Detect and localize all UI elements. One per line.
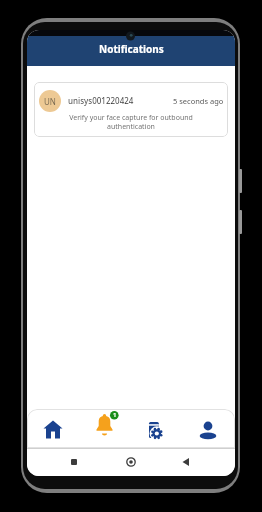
staticText: Verify your face capture for outbound au…	[69, 113, 193, 131]
button[interactable]: UN	[34, 82, 228, 137]
staticText: unisys001220424	[68, 95, 134, 106]
button[interactable]	[131, 409, 183, 448]
staticText: 5 seconds ago	[173, 96, 224, 106]
staticText: 1	[113, 411, 117, 419]
button[interactable]	[183, 409, 235, 448]
button[interactable]: 1	[79, 409, 131, 448]
staticText: Notifications	[99, 42, 164, 56]
staticText: UN	[44, 96, 56, 107]
button[interactable]	[27, 409, 79, 448]
